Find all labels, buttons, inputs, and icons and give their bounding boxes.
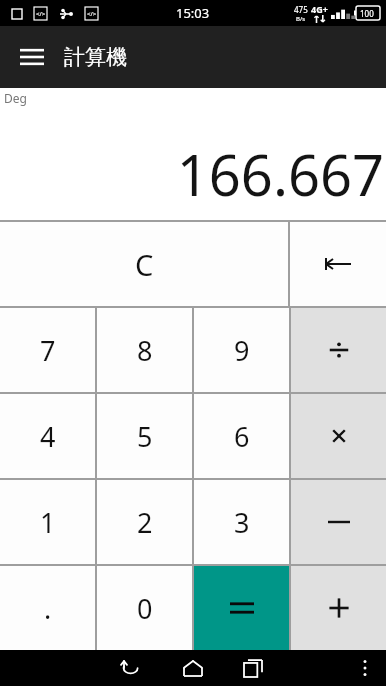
staticText: C bbox=[135, 245, 154, 284]
staticText: 1 bbox=[40, 504, 56, 541]
button[interactable]: More options bbox=[350, 653, 380, 683]
button[interactable]: 7 bbox=[0, 308, 95, 392]
button[interactable]: 6 bbox=[194, 394, 289, 478]
staticText: </> bbox=[36, 10, 46, 18]
button[interactable]: Home bbox=[175, 650, 211, 686]
staticText: 2 bbox=[137, 504, 153, 541]
button[interactable]: 1 bbox=[0, 480, 95, 564]
button[interactable]: . bbox=[0, 566, 95, 650]
staticText: Deg bbox=[4, 90, 27, 106]
button[interactable]: Multiply bbox=[291, 394, 386, 478]
button[interactable]: 5 bbox=[97, 394, 192, 478]
button[interactable]: Menu bbox=[8, 33, 56, 81]
staticText: </> bbox=[87, 10, 97, 18]
staticText: 166.667 bbox=[176, 136, 384, 212]
staticText: 3 bbox=[234, 504, 250, 541]
button[interactable]: Minus bbox=[291, 480, 386, 564]
button[interactable]: C bbox=[0, 222, 288, 306]
staticText: 6 bbox=[234, 418, 250, 455]
staticText: 475 bbox=[294, 4, 308, 15]
staticText: 100 bbox=[360, 8, 374, 19]
button[interactable]: Backspace bbox=[290, 222, 386, 306]
button[interactable]: 4 bbox=[0, 394, 95, 478]
staticText: 15:03 bbox=[176, 4, 210, 22]
button[interactable]: 0 bbox=[97, 566, 192, 650]
button[interactable]: Equals bbox=[194, 566, 289, 650]
staticText: 計算機 bbox=[64, 44, 127, 70]
button[interactable]: Plus bbox=[291, 566, 386, 650]
staticText: 7 bbox=[40, 332, 56, 369]
button[interactable]: Divide bbox=[291, 308, 386, 392]
staticText: 8 bbox=[137, 332, 153, 369]
staticText: 0 bbox=[137, 590, 153, 627]
staticText: B/s bbox=[296, 15, 306, 23]
button[interactable]: 3 bbox=[194, 480, 289, 564]
staticText: 9 bbox=[234, 332, 250, 369]
staticText: 4 bbox=[40, 418, 56, 455]
button[interactable]: 8 bbox=[97, 308, 192, 392]
button[interactable]: 2 bbox=[97, 480, 192, 564]
button[interactable]: 9 bbox=[194, 308, 289, 392]
button[interactable]: Back bbox=[112, 650, 148, 686]
staticText: 4G+ bbox=[311, 3, 328, 15]
staticText: . bbox=[44, 590, 52, 627]
staticText: 5 bbox=[137, 418, 153, 455]
button[interactable]: Recents bbox=[235, 650, 271, 686]
